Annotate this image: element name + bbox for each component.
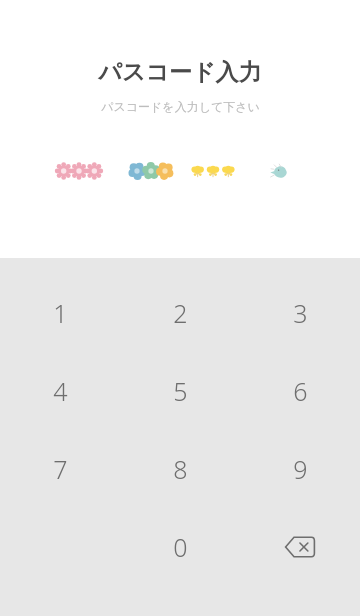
button[interactable]: 4: [24, 361, 96, 421]
staticText: 9: [293, 452, 308, 486]
button[interactable]: 5: [144, 361, 216, 421]
button[interactable]: 1: [24, 283, 96, 343]
staticText: 4: [53, 374, 68, 408]
staticText: 7: [53, 452, 68, 486]
staticText: パスコードを入力して下さい: [101, 99, 260, 114]
staticText: 6: [293, 374, 308, 408]
button[interactable]: 6: [264, 361, 336, 421]
staticText: 1: [53, 296, 68, 330]
staticText: 2: [173, 296, 188, 330]
button[interactable]: Delete: [264, 517, 336, 577]
button[interactable]: 7: [24, 439, 96, 499]
button[interactable]: 8: [144, 439, 216, 499]
button[interactable]: 9: [264, 439, 336, 499]
button[interactable]: 2: [144, 283, 216, 343]
staticText: 3: [293, 296, 308, 330]
button[interactable]: 0: [144, 517, 216, 577]
staticText: パスコード入力: [98, 58, 262, 87]
staticText: 0: [173, 530, 188, 564]
button[interactable]: 3: [264, 283, 336, 343]
staticText: 8: [173, 452, 188, 486]
staticText: 5: [173, 374, 188, 408]
